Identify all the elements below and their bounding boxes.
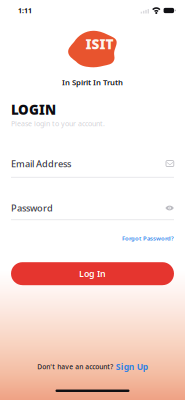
- staticText: Don't have an account?: [37, 362, 113, 371]
- staticText: Please login to your account.: [11, 119, 105, 128]
- button[interactable]: Log In: [11, 262, 174, 285]
- button[interactable]: Forgot Password?: [122, 234, 174, 242]
- staticText: Password: [11, 202, 53, 214]
- staticText: Log In: [79, 268, 106, 280]
- button[interactable]: Sign Up: [116, 361, 148, 372]
- staticText: Email Address: [11, 157, 71, 170]
- staticText: Sign Up: [116, 361, 148, 372]
- staticText: In Spirit In Truth: [62, 77, 123, 87]
- staticText: 1:11: [18, 6, 32, 15]
- staticText: ISIT: [85, 35, 113, 53]
- staticText: LOGIN: [11, 100, 56, 119]
- staticText: Forgot Password?: [122, 234, 174, 242]
